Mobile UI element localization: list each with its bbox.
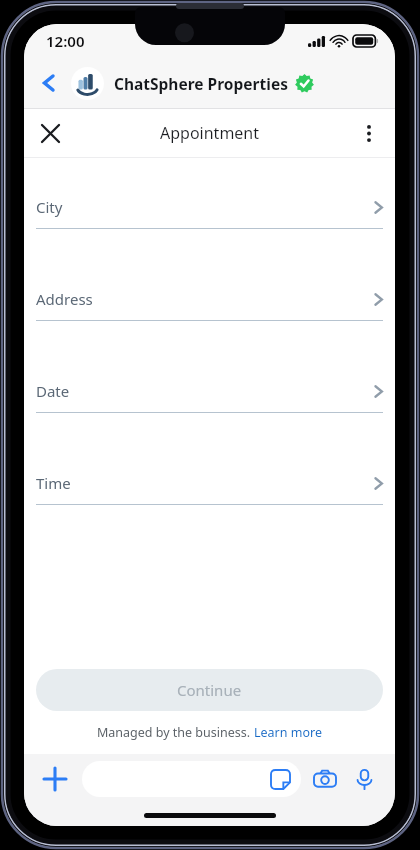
staticText: Appointment xyxy=(160,122,260,144)
staticText: Time xyxy=(36,473,71,493)
staticText: Continue xyxy=(177,680,242,700)
button[interactable]: Close xyxy=(31,114,69,152)
staticText: ChatSphere Properties xyxy=(114,73,288,94)
button[interactable]: Date xyxy=(24,378,395,413)
button[interactable]: Learn more xyxy=(254,724,322,741)
button[interactable]: Stickers xyxy=(267,766,293,792)
staticText: Managed by the business. xyxy=(97,724,254,741)
button[interactable]: Add attachment xyxy=(37,761,73,797)
staticText: Learn more xyxy=(254,724,322,741)
button[interactable]: City xyxy=(24,194,395,229)
staticText: Address xyxy=(36,289,93,309)
button[interactable]: Time xyxy=(24,470,395,505)
button[interactable]: More options xyxy=(350,114,388,152)
button[interactable]: Voice message xyxy=(346,761,382,797)
button[interactable]: Address xyxy=(24,286,395,321)
button[interactable]: Back xyxy=(31,65,67,101)
staticText: Date xyxy=(36,381,70,401)
staticText: 12:00 xyxy=(46,31,85,51)
staticText: City xyxy=(36,197,63,217)
button[interactable]: Stickers xyxy=(82,761,301,797)
button[interactable]: Camera xyxy=(307,761,343,797)
button[interactable]: Continue xyxy=(36,669,383,711)
